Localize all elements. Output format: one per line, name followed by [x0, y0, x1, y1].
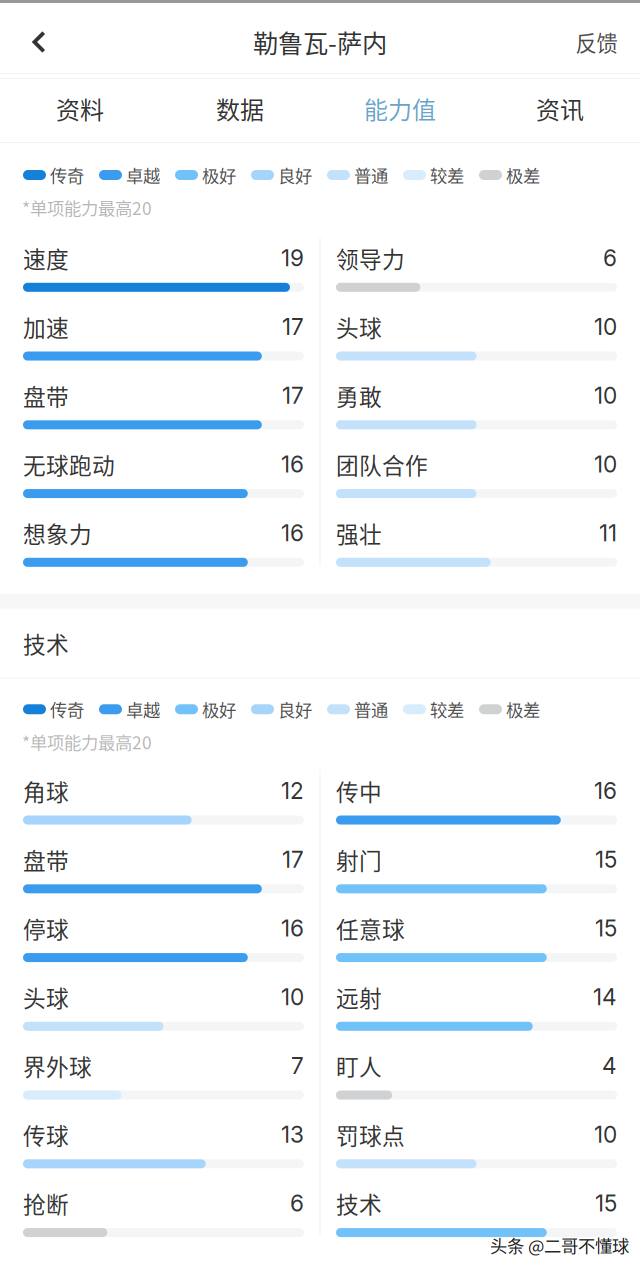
button[interactable]: 反馈	[553, 11, 640, 73]
staticText: 极差	[506, 162, 540, 188]
staticText: 10	[281, 983, 304, 1011]
staticText: 6	[603, 244, 617, 272]
staticText: 16	[281, 519, 304, 547]
staticText: 10	[594, 1121, 617, 1148]
staticText: 17	[282, 313, 304, 340]
staticText: 17	[282, 382, 304, 409]
staticText: 10	[594, 313, 617, 340]
staticText: *单项能力最高20	[22, 195, 152, 220]
staticText: 13	[281, 1121, 304, 1148]
staticText: 19	[281, 244, 304, 272]
staticText: 传球	[23, 1118, 69, 1151]
staticText: 极好	[202, 162, 236, 188]
staticText: 普通	[354, 162, 388, 188]
staticText: 头球	[23, 981, 69, 1013]
staticText: 盘带	[23, 379, 69, 412]
staticText: 较差	[430, 162, 464, 188]
staticText: 16	[281, 450, 304, 478]
staticText: 任意球	[336, 912, 405, 945]
staticText: 勇敢	[336, 379, 382, 412]
staticText: 团队合作	[336, 448, 428, 481]
staticText: 想象力	[23, 517, 92, 549]
staticText: 盯人	[336, 1049, 382, 1082]
staticText: 15	[595, 846, 617, 873]
staticText: 11	[599, 519, 617, 547]
staticText: 传奇	[50, 697, 84, 722]
staticText: 良好	[278, 162, 312, 188]
staticText: 资讯	[536, 91, 584, 126]
staticText: 无球跑动	[23, 448, 115, 481]
staticText: 15	[595, 914, 617, 942]
staticText: 15	[595, 1189, 617, 1217]
staticText: 17	[282, 846, 304, 873]
staticText: 卓越	[126, 697, 160, 722]
staticText: *单项能力最高20	[22, 729, 152, 754]
staticText: 技术	[23, 627, 69, 660]
staticText: 普通	[354, 697, 388, 722]
button[interactable]: 资讯	[480, 79, 640, 138]
staticText: 强壮	[336, 517, 382, 549]
staticText: 16	[594, 777, 617, 804]
staticText: 领导力	[336, 242, 405, 274]
staticText: 7	[291, 1052, 304, 1079]
staticText: 射门	[336, 843, 382, 876]
staticText: 极好	[202, 697, 236, 722]
staticText: 传奇	[50, 162, 84, 188]
button[interactable]: 返回	[0, 11, 78, 73]
staticText: 资料	[56, 91, 104, 126]
staticText: 停球	[23, 912, 69, 945]
staticText: 能力值	[364, 91, 436, 126]
staticText: 勒鲁瓦-萨内	[253, 24, 387, 60]
staticText: 卓越	[126, 162, 160, 188]
button[interactable]: 数据	[160, 79, 320, 138]
staticText: 10	[594, 382, 617, 409]
staticText: 良好	[278, 697, 312, 722]
staticText: 数据	[216, 91, 264, 126]
staticText: 12	[281, 777, 304, 804]
staticText: 加速	[23, 310, 69, 343]
staticText: 技术	[336, 1187, 382, 1220]
staticText: 4	[602, 1052, 617, 1079]
staticText: 14	[593, 983, 617, 1011]
staticText: 反馈	[575, 27, 617, 57]
staticText: 传中	[336, 774, 382, 807]
staticText: 远射	[336, 981, 382, 1013]
staticText: 罚球点	[336, 1118, 405, 1151]
staticText: 头条 @二哥不懂球	[490, 1232, 629, 1258]
staticText: 角球	[23, 774, 69, 807]
staticText: 盘带	[23, 843, 69, 876]
staticText: 较差	[430, 697, 464, 722]
staticText: 界外球	[23, 1049, 92, 1082]
staticText: 速度	[23, 242, 69, 274]
staticText: 16	[281, 914, 304, 942]
staticText: 6	[290, 1189, 304, 1217]
button[interactable]: 资料	[0, 79, 160, 138]
staticText: 极差	[506, 697, 540, 722]
staticText: 抢断	[23, 1187, 69, 1220]
staticText: 10	[594, 450, 617, 478]
button[interactable]: 能力值	[320, 79, 480, 138]
staticText: 头球	[336, 310, 382, 343]
